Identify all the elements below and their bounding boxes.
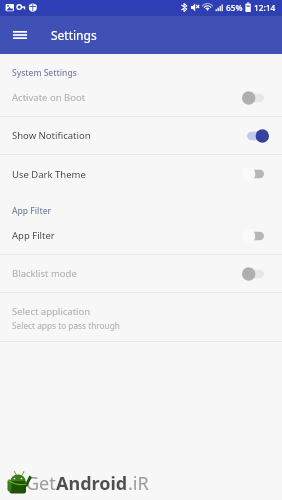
button[interactable]: Blacklist mode <box>0 255 282 292</box>
button[interactable]: App Filter <box>0 217 282 254</box>
staticText: Select apps to pass through <box>12 320 120 331</box>
staticText: 65% <box>226 2 243 13</box>
button[interactable]: Toggle Blacklist mode <box>242 267 269 281</box>
button[interactable]: Activate on Boot <box>0 79 282 116</box>
staticText: Activate on Boot <box>12 91 242 104</box>
staticText: Use Dark Theme <box>12 168 242 181</box>
button[interactable]: Toggle Activate on Boot <box>242 91 269 105</box>
button[interactable]: Use Dark Theme <box>0 155 282 193</box>
staticText: 12:14 <box>254 2 276 13</box>
staticText: Settings <box>51 27 97 43</box>
staticText: Android <box>56 471 128 496</box>
staticText: .iR <box>128 471 149 496</box>
button[interactable]: Toggle Show Notification <box>242 129 269 143</box>
button[interactable]: Toggle App Filter <box>242 229 269 243</box>
staticText: System Settings <box>12 67 77 79</box>
staticText: Show Notification <box>12 129 242 142</box>
staticText: Select application <box>12 305 91 318</box>
button[interactable]: Open navigation menu <box>0 15 39 54</box>
button[interactable]: Select application <box>0 293 282 341</box>
staticText: App Filter <box>12 205 52 217</box>
button[interactable]: Show Notification <box>0 117 282 154</box>
staticText: Get <box>26 471 56 496</box>
staticText: Blacklist mode <box>12 267 242 280</box>
button[interactable]: Toggle Use Dark Theme <box>242 167 269 181</box>
staticText: App Filter <box>12 229 242 242</box>
